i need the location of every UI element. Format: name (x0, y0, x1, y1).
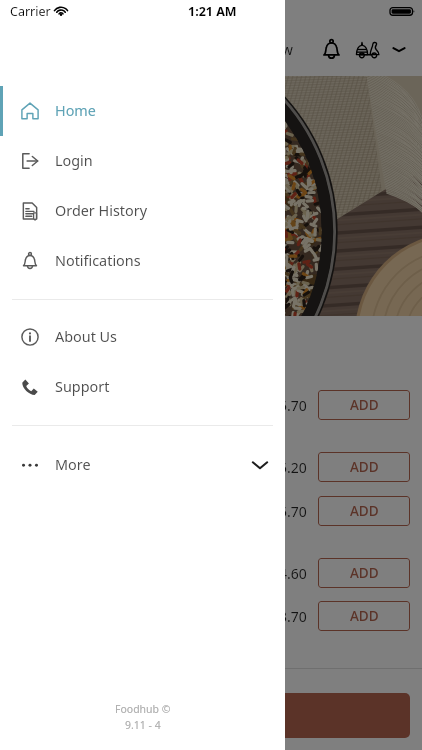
staticText: £5.70 (271, 502, 307, 521)
staticText: £3.70 (271, 607, 307, 626)
staticText: 9.11 - 4 (125, 718, 161, 732)
staticText: Home (55, 101, 96, 121)
button[interactable]: ADD (318, 601, 410, 631)
button[interactable]: ADD (318, 390, 410, 420)
button[interactable]: Notifications (311, 29, 351, 69)
button[interactable]: ADD (318, 452, 410, 482)
staticText: More (55, 455, 91, 475)
staticText: Notifications (55, 251, 141, 271)
staticText: Foodhub © (115, 702, 171, 716)
staticText: £5.20 (271, 458, 307, 477)
button[interactable]: Order History (0, 186, 285, 236)
staticText: Support (55, 377, 110, 397)
staticText: ADD (350, 458, 379, 476)
staticText: ADD (350, 396, 379, 414)
button[interactable]: About Us (0, 312, 285, 362)
staticText: ADD (350, 607, 379, 625)
staticText: Login (55, 151, 93, 171)
staticText: 1:21 AM (188, 3, 237, 20)
button[interactable]: Notifications (0, 236, 285, 286)
button[interactable]: More (0, 440, 285, 490)
staticText: £4.60 (271, 564, 307, 583)
button[interactable]: ADD (318, 558, 410, 588)
button[interactable]: Delivery options (347, 29, 387, 69)
staticText: £5.70 (271, 396, 307, 415)
button[interactable]: ADD (318, 496, 410, 526)
button[interactable]: Home (0, 86, 285, 136)
staticText: Golden Dragon Chinese Old Harlow (51, 39, 293, 59)
staticText: ADD (350, 564, 379, 582)
staticText: Order History (55, 201, 147, 221)
button[interactable]: Expand (383, 33, 415, 65)
staticText: Carrier (10, 3, 51, 20)
button[interactable]: Support (0, 362, 285, 412)
button[interactable]: CHECKOUT (12, 693, 410, 738)
button[interactable]: Login (0, 136, 285, 186)
staticText: About Us (55, 327, 117, 347)
staticText: ADD (350, 502, 379, 520)
